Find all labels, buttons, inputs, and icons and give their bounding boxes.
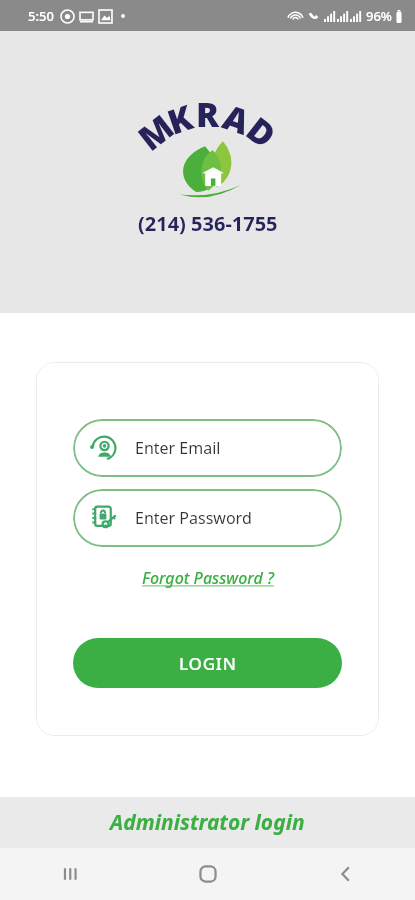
button[interactable]: LOGIN	[73, 638, 342, 688]
staticText: (214) 536-1755	[138, 210, 278, 237]
button[interactable]: Recent apps	[0, 848, 139, 900]
button[interactable]: Home	[139, 848, 277, 900]
staticText: 96%	[366, 7, 392, 25]
button[interactable]: Forgot Password ?	[138, 565, 278, 591]
staticText: R	[196, 91, 220, 137]
staticText: LOGIN	[179, 652, 237, 675]
button[interactable]: Back	[277, 848, 415, 900]
button[interactable]: Enter Password	[73, 489, 342, 547]
staticText: Enter Email	[135, 437, 221, 459]
button[interactable]: Administrator login	[0, 797, 415, 848]
staticText: D	[237, 106, 285, 158]
staticText: K	[161, 93, 199, 145]
staticText: Enter Password	[135, 507, 252, 529]
staticText: Forgot Password ?	[142, 567, 274, 589]
staticText: 5:50	[28, 7, 54, 25]
button[interactable]: Enter Email	[73, 419, 342, 477]
staticText: M	[128, 104, 183, 160]
staticText: Administrator login	[110, 808, 305, 837]
staticText: A	[217, 93, 256, 145]
